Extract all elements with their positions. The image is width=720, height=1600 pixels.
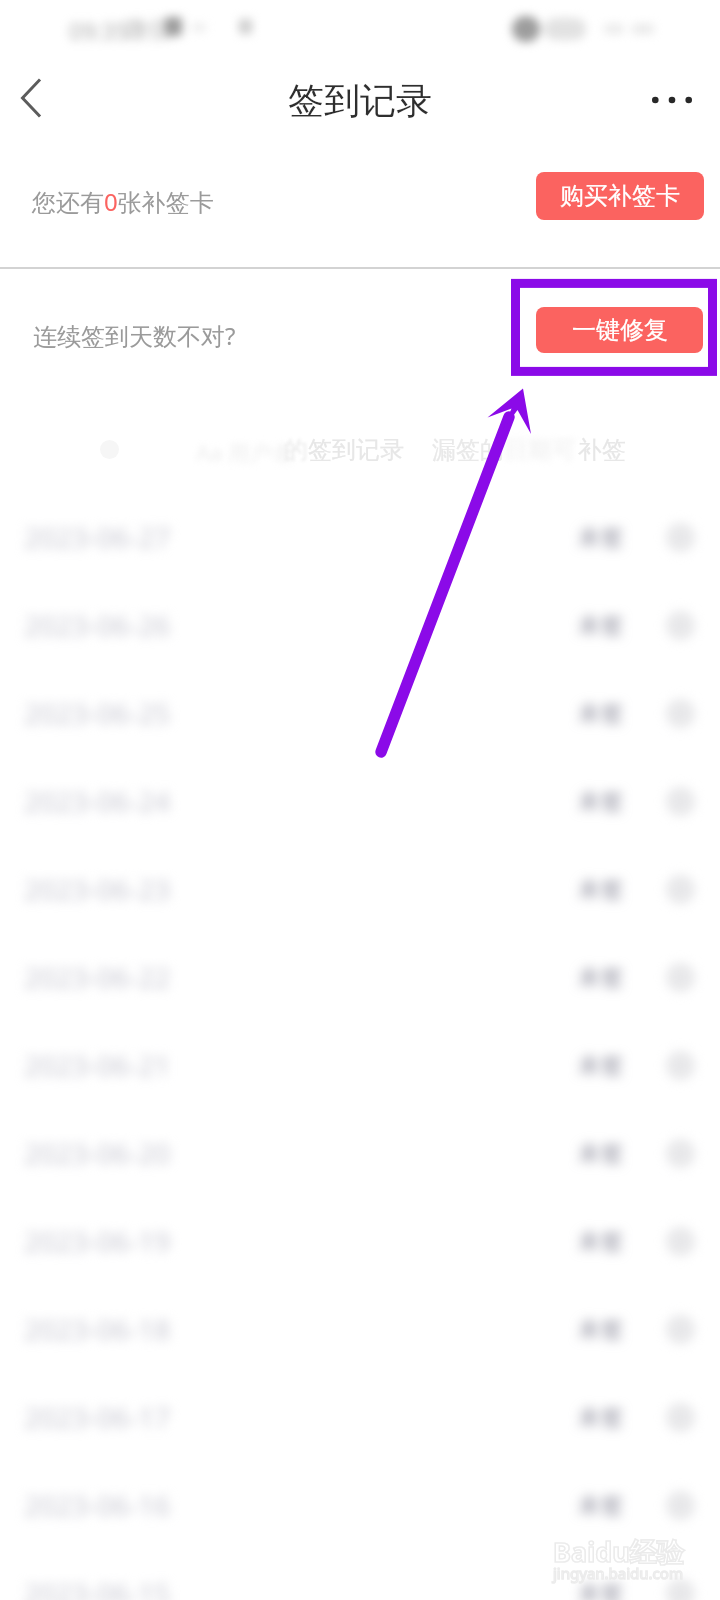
button[interactable]: 2023-06-17 [0,1373,720,1461]
staticText: 未签 [578,1051,624,1080]
button[interactable]: 2023-06-27 [0,493,720,581]
button[interactable]: 购买补签卡 [536,172,704,220]
button[interactable]: 2023-06-16 [0,1461,720,1549]
staticText: 2023-06-21 [24,1046,171,1084]
button[interactable]: Back [0,58,62,142]
staticText: 未签 [578,1139,624,1168]
staticText: 签到记录 [308,435,404,465]
staticText: 未签 [578,1315,624,1344]
button[interactable]: 2023-06-19 [0,1197,720,1285]
staticText: 漏签的 [432,435,504,465]
button[interactable]: 一键修复 [536,307,703,353]
staticText: 09:35 [69,15,128,46]
staticText: 2023-06-20 [24,1134,171,1172]
staticText: 未签 [578,1579,624,1600]
staticText: 未签 [578,1491,624,1520]
staticText: 未签 [578,1227,624,1256]
staticText: 的 [284,435,308,465]
staticText: 日期可 [504,435,576,465]
button[interactable]: 2023-06-15 [0,1549,720,1600]
staticText: 2023-06-19 [24,1222,171,1260]
button[interactable]: 2023-06-23 [0,845,720,933]
staticText: 2023-06-22 [24,958,171,996]
staticText: 补签 [578,435,626,465]
button[interactable]: 2023-06-22 [0,933,720,1021]
staticText: 签到记录 [288,78,432,123]
staticText: 连续签到天数不对? [33,319,236,352]
staticText: 2023-06-25 [24,694,171,732]
staticText: jingyan.baidu.com [553,1563,683,1583]
staticText: 微信 [125,15,171,44]
staticText: 未签 [578,611,624,640]
staticText: 购买补签卡 [560,181,680,211]
button[interactable]: 2023-06-20 [0,1109,720,1197]
button[interactable]: 2023-06-21 [0,1021,720,1109]
staticText: 未签 [578,523,624,552]
staticText: 未签 [578,699,624,728]
staticText: 未签 [578,875,624,904]
button[interactable]: 2023-06-26 [0,581,720,669]
staticText: 未签 [578,787,624,816]
staticText: Baidu经验 [553,1533,684,1570]
staticText: 您还有0张补签卡 [32,185,214,218]
staticText: 2023-06-16 [24,1486,171,1524]
staticText: 2023-06-24 [24,782,171,820]
staticText: 未签 [578,1403,624,1432]
staticText: 2023-06-18 [24,1310,171,1348]
button[interactable]: 2023-06-18 [0,1285,720,1373]
staticText: 2023-06-17 [24,1398,171,1436]
staticText: 一键修复 [572,315,668,345]
staticText: 2023-06-23 [24,870,171,908]
staticText: 2023-06-15 [24,1574,171,1600]
staticText: 未签 [578,963,624,992]
button[interactable]: More options [632,58,720,142]
staticText: 2023-06-27 [24,518,171,556]
button[interactable]: 2023-06-24 [0,757,720,845]
staticText: 2023-06-26 [24,606,171,644]
button[interactable]: 2023-06-25 [0,669,720,757]
